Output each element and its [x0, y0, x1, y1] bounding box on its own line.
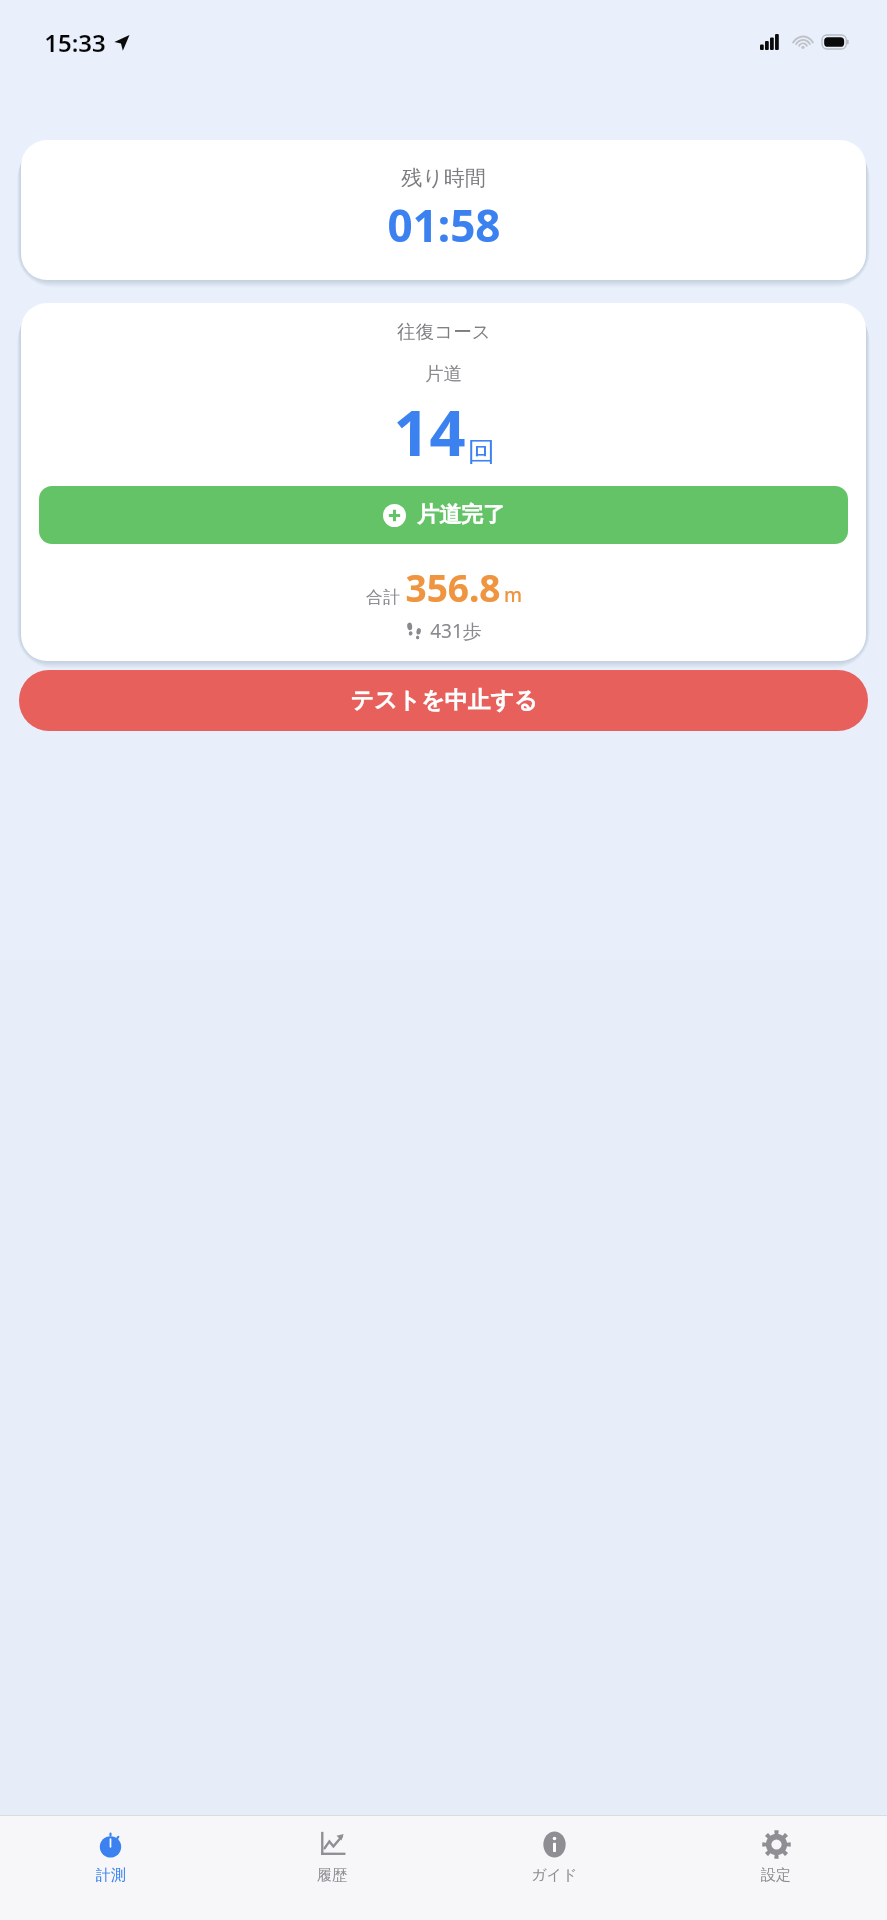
staticText: 356.8 [405, 562, 501, 612]
staticText: ガイド [531, 1866, 578, 1885]
staticText: 01:58 [387, 195, 501, 255]
staticText: 15:33 [44, 26, 106, 59]
button[interactable]: テストを中止する [19, 670, 868, 731]
staticText: m [504, 582, 522, 608]
staticText: 合計 [366, 587, 400, 608]
button[interactable]: 計測 Measure [0, 1816, 221, 1920]
staticText: テストを中止する [350, 686, 538, 715]
button[interactable]: ガイド Guide [443, 1816, 665, 1920]
staticText: 431歩 [430, 618, 482, 644]
button[interactable]: 履歴 History [221, 1816, 443, 1920]
staticText: 計測 [96, 1866, 126, 1885]
button[interactable]: 設定 Settings [665, 1816, 887, 1920]
staticText: 14 [393, 389, 466, 475]
staticText: 設定 [761, 1866, 791, 1885]
staticText: 残り時間 [401, 165, 486, 191]
staticText: 片道完了 [417, 501, 505, 529]
staticText: 履歴 [317, 1866, 347, 1885]
staticText: 往復コース [397, 320, 491, 343]
staticText: 回 [468, 435, 495, 469]
staticText: 片道 [425, 362, 462, 385]
button[interactable]: 片道完了 [39, 486, 848, 544]
